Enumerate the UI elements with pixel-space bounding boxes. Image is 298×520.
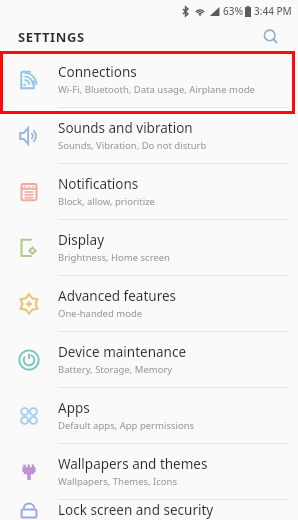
staticText: Connections <box>58 63 137 81</box>
staticText: Battery, Storage, Memory <box>58 363 173 376</box>
staticText: One-handed mode <box>58 307 143 320</box>
staticText: Wi-Fi, Bluetooth, Data usage, Airplane m… <box>58 83 255 96</box>
staticText: Default apps, App permissions <box>58 419 195 432</box>
button[interactable]: Search <box>258 24 284 50</box>
button[interactable]: Display <box>0 220 298 275</box>
button[interactable]: Sounds and vibration <box>0 108 298 163</box>
staticText: Apps <box>58 399 90 417</box>
staticText: 63% <box>223 4 243 18</box>
button[interactable]: Advanced features <box>0 276 298 331</box>
staticText: Sounds and vibration <box>58 119 193 137</box>
button[interactable]: Notifications <box>0 164 298 219</box>
staticText: Advanced features <box>58 287 177 305</box>
staticText: Device maintenance <box>58 343 187 361</box>
staticText: SETTINGS <box>18 28 85 46</box>
button[interactable]: Wallpapers and themes <box>0 444 298 499</box>
staticText: Notifications <box>58 175 139 193</box>
staticText: Wallpapers, Themes, Icons <box>58 475 178 488</box>
staticText: Display <box>58 231 105 249</box>
staticText: Brightness, Home screen <box>58 251 170 264</box>
staticText: Block, allow, prioritize <box>58 195 155 208</box>
button[interactable]: Lock screen and security <box>0 500 298 520</box>
staticText: Wallpapers and themes <box>58 455 208 473</box>
button[interactable]: Connections <box>0 52 298 107</box>
staticText: Lock screen and security <box>58 501 214 519</box>
staticText: Sounds, Vibration, Do not disturb <box>58 139 207 152</box>
staticText: 3:44 PM <box>254 4 292 18</box>
button[interactable]: Device maintenance <box>0 332 298 387</box>
button[interactable]: Apps <box>0 388 298 443</box>
